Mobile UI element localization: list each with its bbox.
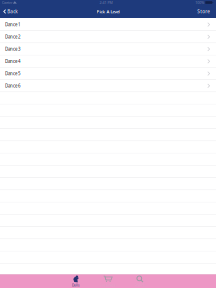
staticText: Dance 1 [5,22,21,28]
button[interactable]: Dance 1 [0,19,216,31]
button[interactable]: Store [192,5,216,18]
button[interactable]: Costumes [92,275,124,288]
button[interactable]: Search [124,275,156,288]
staticText: Dance 4 [5,58,21,64]
staticText: 2:41 PM [99,0,112,5]
staticText: 100% [195,0,204,5]
staticText: Dance 3 [5,46,21,52]
button[interactable]: Dolls [60,275,92,288]
staticText: Dance 5 [5,71,21,77]
button[interactable]: Back [0,5,20,18]
staticText: Dance 2 [5,34,21,40]
button[interactable]: Dance 6 [0,80,216,92]
button[interactable]: Dance 2 [0,31,216,43]
staticText: Store [197,8,210,15]
staticText: Back [7,8,17,15]
button[interactable]: Dance 4 [0,55,216,68]
staticText: Pick A Level [96,9,119,14]
button[interactable]: Dance 5 [0,68,216,80]
staticText: Dolls [72,283,80,287]
button[interactable]: Dance 3 [0,43,216,55]
staticText: Dance 6 [5,83,21,89]
staticText: Carrier [2,0,12,5]
